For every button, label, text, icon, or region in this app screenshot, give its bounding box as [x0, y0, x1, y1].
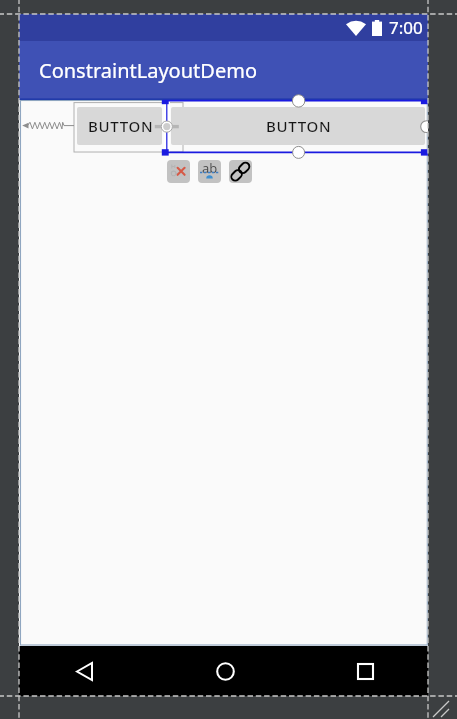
staticText: BUTTON: [266, 116, 332, 136]
button[interactable]: Back: [64, 651, 104, 691]
button[interactable]: Clear all constraints: [167, 160, 190, 183]
button[interactable]: Home: [205, 651, 245, 691]
staticText: ConstraintLayoutDemo: [39, 57, 257, 84]
staticText: 7:00: [389, 16, 423, 39]
staticText: BUTTON: [88, 116, 154, 136]
button[interactable]: BUTTON: [77, 107, 162, 145]
button[interactable]: Show baseline: [198, 160, 221, 183]
button[interactable]: Create horizontal chain: [229, 160, 252, 183]
button[interactable]: Recent apps: [345, 651, 385, 691]
button[interactable]: BUTTON: [171, 107, 425, 145]
staticText: ab: [202, 160, 218, 177]
